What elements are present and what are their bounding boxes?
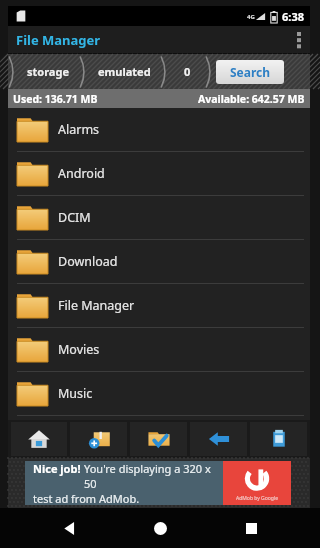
staticText: emulated (98, 64, 151, 79)
button[interactable]: Music (8, 372, 310, 415)
staticText: File Manager (16, 31, 101, 49)
staticText: Available: 642.57 MB (198, 92, 305, 106)
button[interactable]: Home (138, 508, 182, 548)
button[interactable]: DCIM (8, 196, 310, 239)
button[interactable]: Alarms (8, 108, 310, 151)
button[interactable]: Android (8, 152, 310, 195)
staticText: Android (58, 165, 105, 182)
staticText: Used: 136.71 MB (13, 92, 98, 106)
button[interactable]: Back (190, 422, 247, 456)
button[interactable]: Back (47, 508, 91, 548)
staticText: Movies (58, 341, 100, 358)
button[interactable]: Movies (8, 328, 310, 371)
staticText: 4G (247, 13, 255, 21)
button[interactable]: More options (288, 26, 310, 54)
button[interactable]: Paste (250, 422, 307, 456)
button[interactable]: File Manager (8, 284, 310, 327)
staticText: Nice job! (33, 461, 84, 476)
button[interactable]: emulated (88, 54, 160, 89)
button[interactable]: New folder (70, 422, 127, 456)
button[interactable]: storage (17, 54, 79, 89)
staticText: storage (27, 64, 69, 79)
staticText: test ad from AdMob. (33, 491, 140, 505)
button[interactable]: Home (11, 422, 67, 456)
staticText: AdMob by Google (236, 495, 278, 502)
staticText: Alarms (58, 121, 100, 138)
button[interactable]: Advertisement (25, 461, 291, 505)
staticText: You're displaying a 320 x 50 (84, 461, 223, 491)
staticText: DCIM (58, 209, 91, 226)
button[interactable]: 0 (169, 54, 205, 89)
staticText: Download (58, 253, 118, 270)
button[interactable]: Select (130, 422, 187, 456)
staticText: File Manager (58, 297, 135, 314)
button[interactable]: Recents (229, 508, 273, 548)
button[interactable]: Download (8, 240, 310, 283)
staticText: Music (58, 385, 93, 402)
button[interactable]: Search (216, 60, 284, 84)
staticText: 6:38 (282, 9, 304, 24)
staticText: 0 (184, 64, 191, 79)
staticText: Search (230, 64, 271, 80)
